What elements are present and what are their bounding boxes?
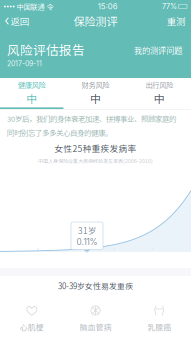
staticText: 风险评估报告 — [7, 40, 85, 59]
button[interactable]: 健康风险 — [0, 78, 64, 109]
staticText: 财务风险 — [81, 79, 109, 90]
button[interactable]: 出行风险 — [127, 78, 191, 109]
staticText: 保险测评 — [73, 13, 117, 29]
button[interactable]: 重测 — [161, 13, 191, 29]
staticText: 中 — [90, 90, 101, 106]
staticText: 令 — [45, 1, 54, 12]
staticText: 出行风险 — [145, 79, 173, 90]
staticText: 返回 — [11, 14, 29, 28]
staticText: 中国联通 — [15, 1, 45, 12]
button[interactable]: 我的测评问题 — [132, 41, 184, 59]
staticText: 乳腺癌 — [147, 321, 171, 333]
staticText: 77% — [162, 2, 177, 11]
button[interactable]: 脑血管病 — [64, 302, 127, 336]
staticText: 同时别忘了多多关心自身的健康。 — [7, 127, 112, 138]
staticText: 健康风险 — [18, 79, 46, 90]
button[interactable]: 财务风险 — [64, 78, 127, 109]
staticText: 2017-09-11 — [7, 60, 42, 68]
staticText: 30-39岁女性易发重疾 — [58, 280, 133, 291]
staticText: 30岁后，我们的身体衰老加速、拼搏事业、照顾家庭的 — [7, 113, 176, 124]
button[interactable]: 心肌梗 — [0, 302, 64, 336]
staticText: 中国人身保险业重大疾病经验发生率表(2006-2010) — [38, 157, 153, 164]
staticText: 31岁 — [78, 224, 96, 236]
button[interactable]: 乳腺癌 — [127, 302, 191, 336]
staticText: 心肌梗 — [20, 321, 44, 333]
staticText: 中 — [26, 90, 37, 106]
staticText: 0.11% — [76, 237, 97, 247]
staticText: 脑血管病 — [79, 321, 111, 333]
staticText: 重测 — [167, 14, 185, 28]
button[interactable]: 返回 — [0, 13, 34, 29]
staticText: 15:06 — [98, 2, 118, 11]
staticText: 中 — [154, 90, 165, 106]
staticText: 女性25种重疾发病率 — [54, 142, 136, 154]
staticText: 我的测评问题 — [134, 44, 182, 56]
